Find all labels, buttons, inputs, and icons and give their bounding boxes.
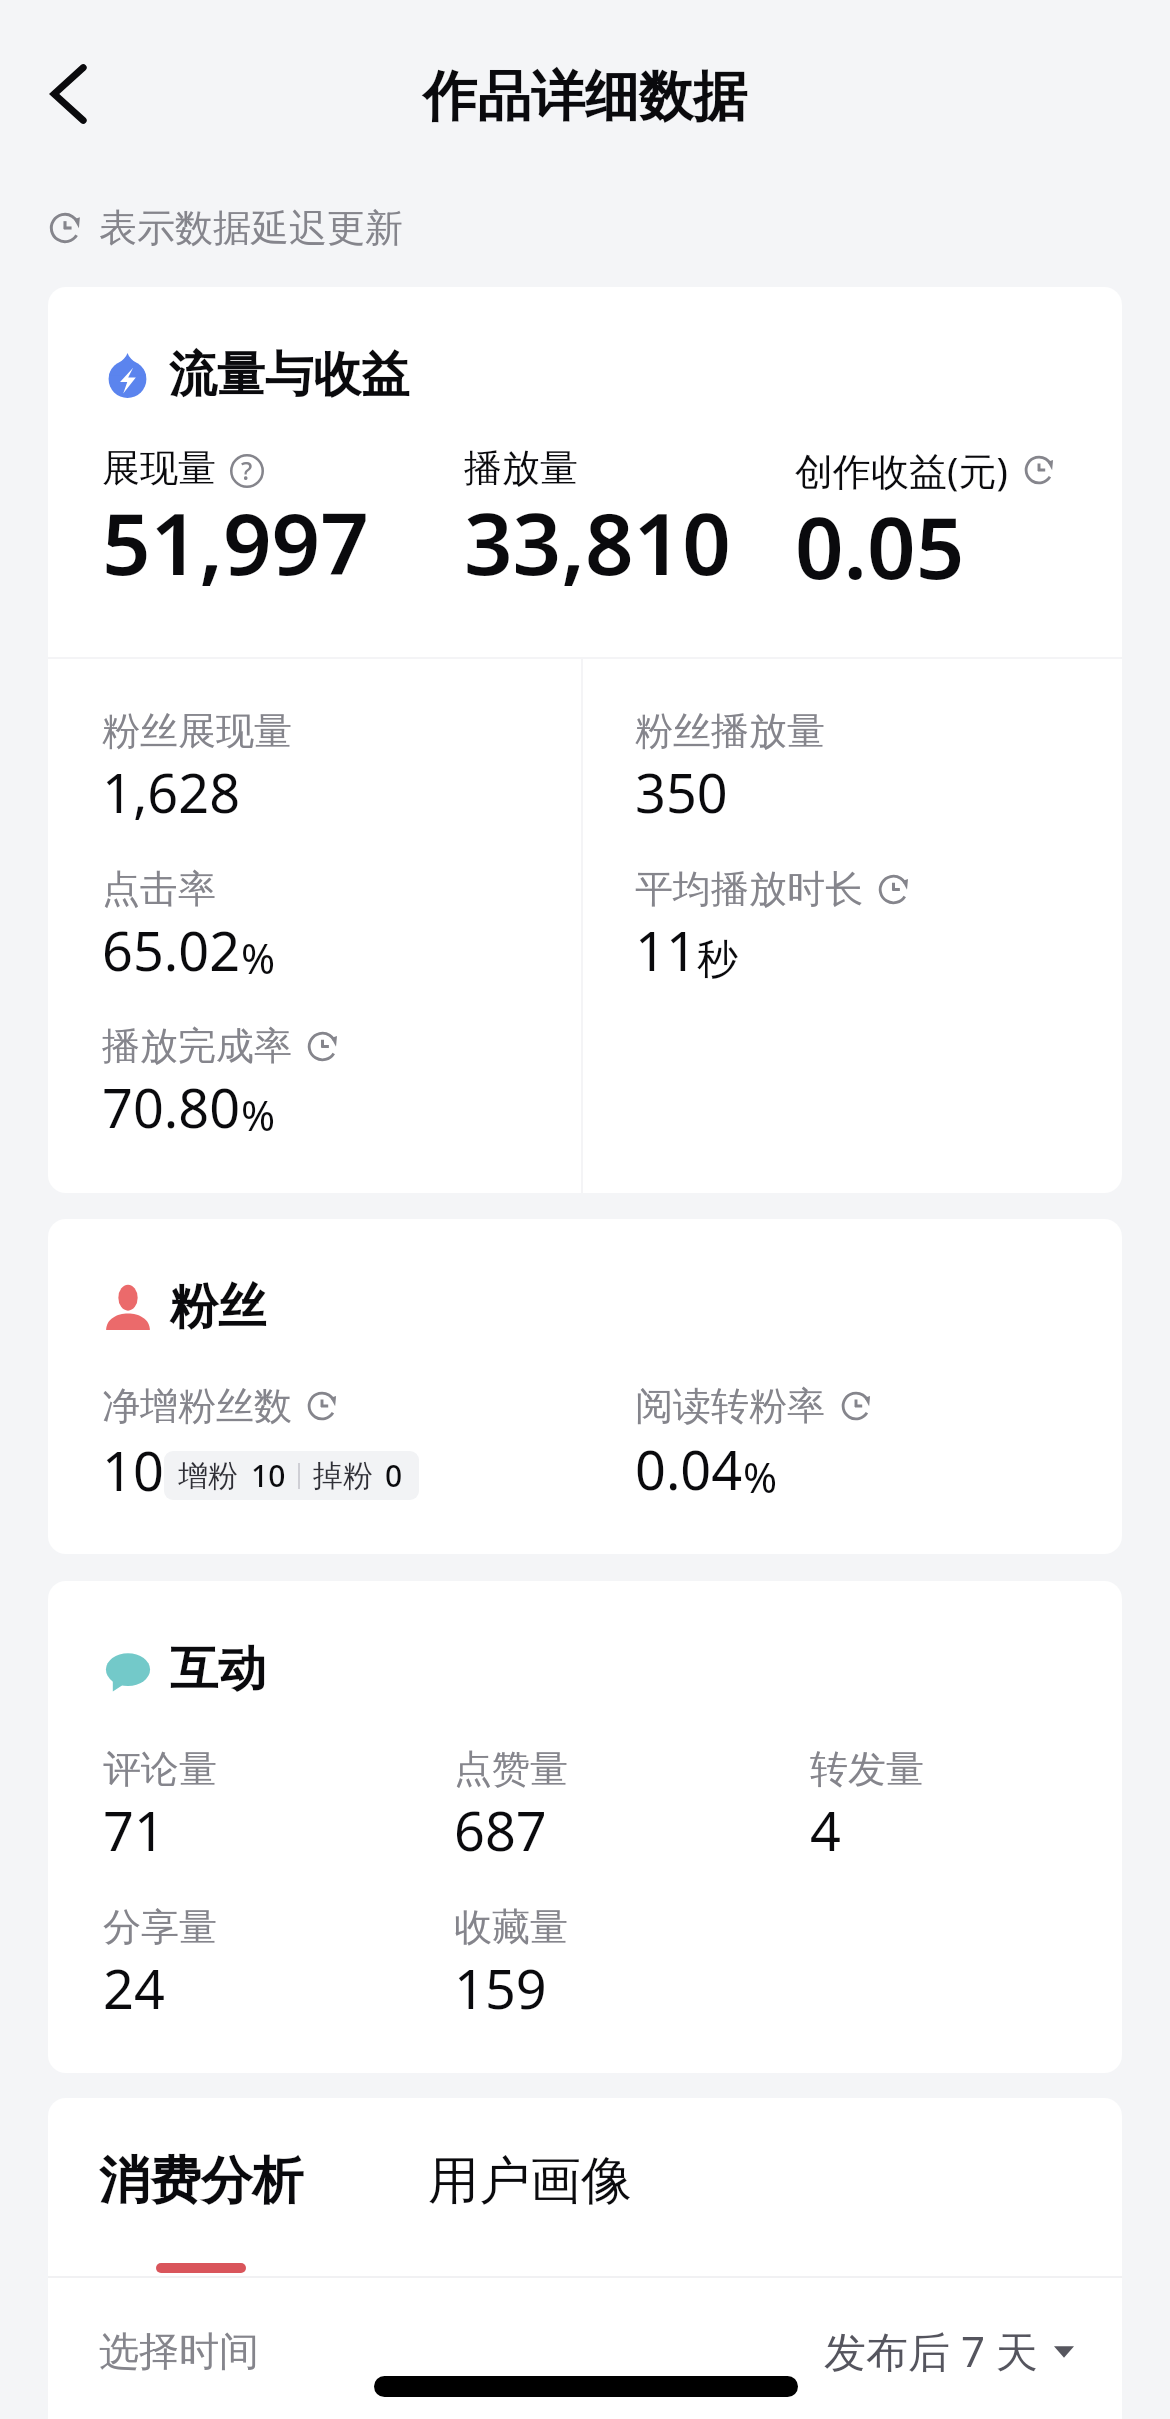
- button[interactable]: 互动: [105, 1639, 266, 1699]
- staticText: 159: [454, 1951, 547, 2025]
- staticText: 33,810: [464, 484, 731, 600]
- staticText: 70.80: [102, 1070, 241, 1144]
- staticText: 687: [454, 1793, 547, 1867]
- staticText: 1,628: [102, 755, 241, 829]
- staticText: 粉丝: [170, 1277, 266, 1337]
- staticText: 收藏量: [454, 1903, 568, 1951]
- staticText: 10: [102, 1433, 164, 1507]
- staticText: 净增粉丝数: [102, 1382, 292, 1430]
- button[interactable]: 粉丝: [105, 1277, 266, 1337]
- staticText: 点击率: [102, 865, 216, 913]
- staticText: 转发量: [810, 1745, 924, 1793]
- staticText: 71: [103, 1793, 165, 1867]
- staticText: 分享量: [103, 1903, 217, 1951]
- staticText: 用户画像: [428, 2149, 632, 2213]
- button[interactable]: 消费分析: [99, 2149, 303, 2273]
- staticText: 350: [635, 755, 728, 829]
- staticText: 粉丝播放量: [635, 707, 825, 755]
- button[interactable]: 发布后 7 天: [824, 2322, 1074, 2379]
- staticText: 11: [635, 913, 697, 987]
- staticText: 24: [103, 1951, 165, 2025]
- staticText: 表示数据延迟更新: [99, 204, 403, 252]
- staticText: 播放量: [464, 444, 578, 492]
- staticText: 0.04: [635, 1432, 743, 1506]
- staticText: 4: [810, 1793, 841, 1867]
- staticText: 0: [385, 1455, 403, 1496]
- staticText: %: [743, 1449, 778, 1505]
- staticText: 互动: [170, 1639, 266, 1699]
- staticText: 阅读转粉率: [635, 1382, 825, 1430]
- staticText: 增粉: [178, 1457, 238, 1495]
- staticText: 点赞量: [454, 1745, 568, 1793]
- staticText: 选择时间: [99, 2326, 259, 2376]
- button[interactable]: Back: [20, 44, 120, 144]
- staticText: 评论量: [103, 1745, 217, 1793]
- staticText: 0.05: [795, 488, 965, 604]
- staticText: 创作收益(元): [795, 444, 1008, 496]
- staticText: 秒: [697, 934, 738, 986]
- button[interactable]: What is impressions?: [230, 454, 264, 488]
- staticText: 消费分析: [99, 2149, 303, 2213]
- button[interactable]: 用户画像: [428, 2149, 632, 2273]
- staticText: 粉丝展现量: [102, 707, 292, 755]
- staticText: %: [241, 930, 276, 986]
- staticText: 展现量: [102, 444, 216, 492]
- button[interactable]: 流量与收益: [105, 345, 409, 405]
- staticText: 65.02: [102, 913, 241, 987]
- staticText: 流量与收益: [169, 345, 409, 405]
- staticText: 平均播放时长: [635, 865, 863, 913]
- staticText: 51,997: [102, 484, 369, 600]
- staticText: 作品详细数据: [423, 63, 747, 131]
- staticText: 掉粉: [313, 1457, 373, 1495]
- staticText: %: [241, 1087, 276, 1143]
- staticText: ?: [241, 453, 253, 487]
- staticText: 发布后 7 天: [824, 2322, 1038, 2379]
- staticText: 播放完成率: [102, 1022, 292, 1070]
- staticText: 10: [251, 1455, 286, 1496]
